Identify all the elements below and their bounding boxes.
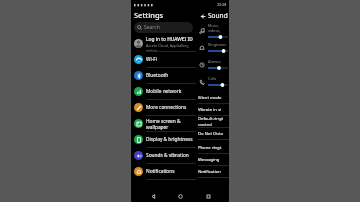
button[interactable]: Log in to HUAWEI ID	[131, 36, 196, 51]
staticText: Phone ringt	[198, 145, 222, 151]
staticText: Vibrate in si	[198, 107, 221, 113]
button[interactable]: Notification	[196, 166, 229, 177]
button[interactable]: Notifications	[131, 164, 196, 179]
staticText: Default ringt control	[198, 116, 223, 127]
button[interactable]: Mobile network	[131, 84, 196, 99]
button[interactable]: Alarm	[196, 56, 229, 73]
staticText: Settings	[134, 10, 164, 20]
button[interactable]: Wi-Fi	[131, 52, 196, 67]
staticText: Do Not Distu	[198, 131, 224, 137]
button[interactable]: Home	[174, 190, 186, 202]
other: Music	[198, 27, 206, 35]
button[interactable]: Messaging	[196, 154, 229, 165]
staticText: Alarms	[208, 59, 221, 64]
other: Ringtone	[198, 44, 206, 52]
button[interactable]: Ringtone	[196, 39, 229, 56]
button[interactable]: Bluetooth	[131, 68, 196, 83]
button[interactable]: Back	[147, 190, 159, 202]
other: Alarm	[198, 61, 206, 69]
button[interactable]: Calls	[196, 73, 229, 90]
staticText: More connections	[146, 104, 187, 111]
staticText: Home screen & wallpaper	[146, 118, 193, 130]
button[interactable]: Sounds & vibration	[131, 148, 196, 163]
staticText: Calls	[208, 76, 217, 81]
staticText: Bluetooth	[146, 72, 169, 79]
staticText: Messaging	[198, 157, 220, 163]
button[interactable]: Silent mode	[196, 92, 229, 103]
staticText: Display & brightness	[146, 136, 193, 143]
staticText: Notification	[198, 169, 221, 175]
staticText: Sounds & vibration	[146, 152, 189, 159]
staticText: Music, videos, games	[208, 23, 228, 33]
staticText: Sound	[208, 11, 228, 20]
staticText: Wi-Fi	[146, 56, 157, 63]
button[interactable]: Display & brightness	[131, 132, 196, 147]
staticText: Access Cloud, AppGallery, and m	[146, 43, 193, 51]
button[interactable]: Recents	[202, 190, 214, 202]
other: Calls	[198, 78, 206, 86]
staticText: Log in to HUAWEI ID	[146, 36, 193, 43]
staticText: Silent mode	[198, 95, 222, 101]
button[interactable]: Back	[198, 12, 206, 20]
button[interactable]: More connections	[131, 100, 196, 115]
button[interactable]: Default ringt control	[196, 116, 229, 127]
button[interactable]: Music	[196, 22, 229, 39]
button[interactable]: Home screen & wallpaper	[131, 116, 196, 131]
button[interactable]: Vibrate in si	[196, 104, 229, 115]
staticText: Mobile network	[146, 88, 182, 95]
button[interactable]: Phone ringt	[196, 142, 229, 153]
staticText: Search	[144, 24, 160, 31]
staticText: 23:38	[217, 2, 227, 7]
button[interactable]: Search	[134, 22, 193, 33]
button[interactable]: Do Not Distu	[196, 128, 229, 139]
staticText: Ringtones	[208, 42, 226, 47]
staticText: Notifications	[146, 168, 175, 175]
